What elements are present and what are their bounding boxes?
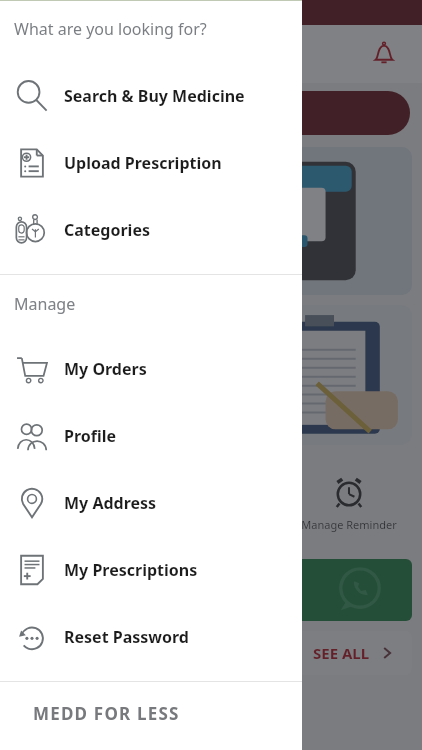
staticText: My Prescriptions xyxy=(64,559,198,581)
button[interactable]: Search products... xyxy=(12,91,410,135)
button[interactable]: Order on WhatsApp xyxy=(10,559,412,621)
button[interactable]: My Orders xyxy=(0,335,302,402)
staticText: My Orders xyxy=(64,358,147,380)
staticText: MEDDFORLESS xyxy=(16,33,161,60)
button[interactable] xyxy=(10,305,412,445)
staticText: Reset Password xyxy=(64,626,189,648)
staticText: Categories xyxy=(64,219,150,241)
staticText: Order on WhatsApp xyxy=(26,580,173,600)
button[interactable]: Upload Prescription xyxy=(0,129,302,196)
staticText: Upload Prescription xyxy=(64,152,222,174)
button[interactable]: Manage Reminder xyxy=(148,455,275,551)
staticText: Manage Reminder xyxy=(26,517,122,532)
button[interactable]: Manage Reminder xyxy=(10,455,138,551)
button[interactable]: Notifications xyxy=(362,32,406,76)
button[interactable]: Profile xyxy=(0,402,302,469)
staticText: Search products... xyxy=(30,104,148,123)
staticText: My Address xyxy=(64,492,157,514)
staticText: Profile xyxy=(64,425,117,447)
staticText: What are you looking for? xyxy=(14,18,207,40)
button[interactable]: Categories xyxy=(0,196,302,263)
staticText: MEDD FOR LESS xyxy=(33,702,180,725)
button[interactable]: Search & Buy Medicine xyxy=(0,62,302,129)
staticText: SEE ALL xyxy=(313,643,370,663)
staticText: Search & Buy Medicine xyxy=(64,85,245,107)
button[interactable]: SEE ALL xyxy=(10,631,412,675)
button[interactable]: My Address xyxy=(0,469,302,536)
button[interactable]: Reset Password xyxy=(0,603,302,670)
button[interactable] xyxy=(10,147,412,295)
button[interactable]: My Prescriptions xyxy=(0,536,302,603)
button[interactable]: Manage Reminder xyxy=(285,455,412,551)
staticText: Manage Reminder xyxy=(301,517,397,532)
staticText: Manage xyxy=(14,293,76,315)
